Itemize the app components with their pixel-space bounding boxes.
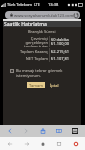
- button[interactable]: www.sosyalsorumluluk123.com: [5, 11, 80, 19]
- button[interactable]: Back: [4, 125, 16, 137]
- staticText: Türk Telekom: [7, 2, 33, 7]
- staticText: Çevrimiçi gerçekleşen toplam tutar: [24, 36, 48, 47]
- staticText: LTE: [34, 2, 40, 7]
- staticText: İptal: [50, 83, 59, 88]
- staticText: ₺1.107,81: [51, 56, 70, 61]
- staticText: Toplam Kazanç: [19, 49, 48, 54]
- staticText: NET Toplam: [25, 56, 48, 61]
- button[interactable]: İptal: [50, 82, 59, 88]
- button[interactable]: Bu mesajı tekrar görmek istemiyorum.: [10, 68, 77, 78]
- button[interactable]: Tabs: [69, 125, 81, 137]
- button[interactable]: Back: [3, 137, 16, 150]
- button[interactable]: Home: [36, 137, 49, 150]
- button[interactable]: Reload: [74, 12, 78, 18]
- staticText: 60 dakika ₺1.100,00: [51, 37, 70, 46]
- button[interactable]: Recents: [52, 137, 65, 150]
- button[interactable]: Bookmarks: [53, 125, 65, 137]
- staticText: www.sosyalsorumluluk123.com: [14, 13, 74, 18]
- staticText: Branşlık Süresi: [28, 29, 56, 34]
- staticText: Saatlik Hatırlatma: [4, 21, 47, 27]
- button[interactable]: Forward: [20, 137, 33, 150]
- button[interactable]: Forward: [20, 125, 32, 137]
- button[interactable]: Assistant: [69, 137, 82, 150]
- staticText: Tamam: [29, 83, 43, 88]
- staticText: 13:38: [48, 2, 59, 7]
- staticText: ₺2.215,61: [51, 49, 70, 54]
- button[interactable]: Share: [37, 125, 49, 137]
- staticText: Bu mesajı tekrar görmek istemiyorum.: [16, 68, 63, 78]
- button[interactable]: Tamam: [27, 82, 45, 88]
